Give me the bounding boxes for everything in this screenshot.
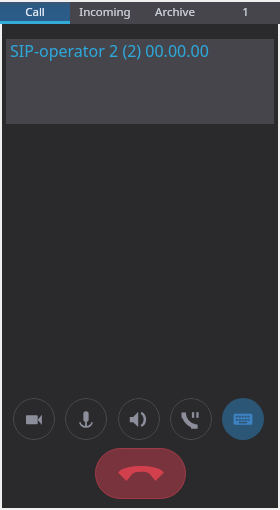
- button[interactable]: Speaker: [118, 398, 160, 440]
- button[interactable]: Archive: [140, 2, 210, 24]
- button[interactable]: Video: [13, 398, 55, 440]
- staticText: SIP-operator 2 (2) 00.00.00: [10, 40, 209, 62]
- button[interactable]: Dialpad: [222, 398, 264, 440]
- staticText: Call: [25, 4, 45, 20]
- staticText: Archive: [155, 4, 195, 20]
- button[interactable]: SIP-operator 2 (2) 00.00.00: [6, 39, 274, 124]
- button[interactable]: Mute microphone: [65, 398, 107, 440]
- staticText: 1: [242, 4, 249, 20]
- staticText: Incoming: [79, 4, 131, 20]
- button[interactable]: Call: [0, 2, 70, 24]
- button[interactable]: 1: [210, 2, 280, 24]
- button[interactable]: Incoming: [70, 2, 140, 24]
- button[interactable]: End call: [95, 448, 186, 499]
- button[interactable]: Hold call: [170, 398, 212, 440]
